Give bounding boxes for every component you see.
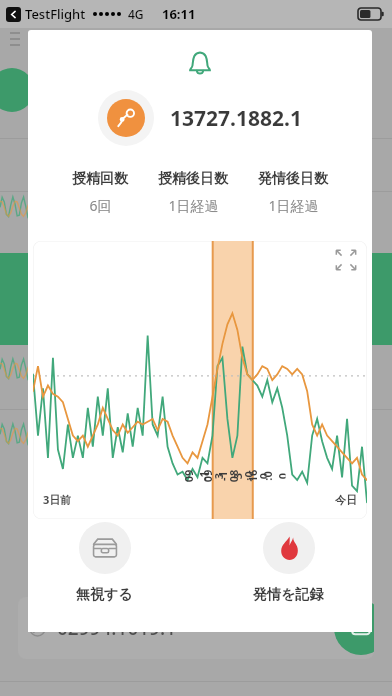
staticText: 3日前: [43, 492, 72, 507]
staticText: 16:11: [162, 5, 196, 23]
staticText: 02994.1019.1: [57, 615, 177, 641]
staticText: 1日経過: [268, 196, 319, 215]
staticText: 発情後日数: [258, 170, 328, 188]
other: Notification: [187, 50, 213, 76]
staticText: 09-13 16:00: [199, 468, 285, 483]
staticText: 4G: [128, 6, 144, 22]
button[interactable]: 発情を記録: [235, 520, 342, 606]
staticText: 09-13 08:00: [180, 468, 266, 483]
staticText: 発情を記録: [253, 586, 324, 604]
staticText: TestFlight: [25, 5, 86, 23]
staticText: 授精後日数: [158, 170, 228, 188]
button[interactable]: 無視する: [58, 520, 151, 606]
staticText: 1日経過: [168, 196, 219, 215]
staticText: 授精回数: [72, 170, 128, 188]
staticText: 今日: [335, 493, 357, 507]
staticText: 6回: [89, 196, 112, 215]
button[interactable]: Expand chart: [335, 249, 357, 271]
staticText: 無視する: [76, 586, 133, 604]
staticText: 13727.1882.1: [170, 104, 302, 133]
